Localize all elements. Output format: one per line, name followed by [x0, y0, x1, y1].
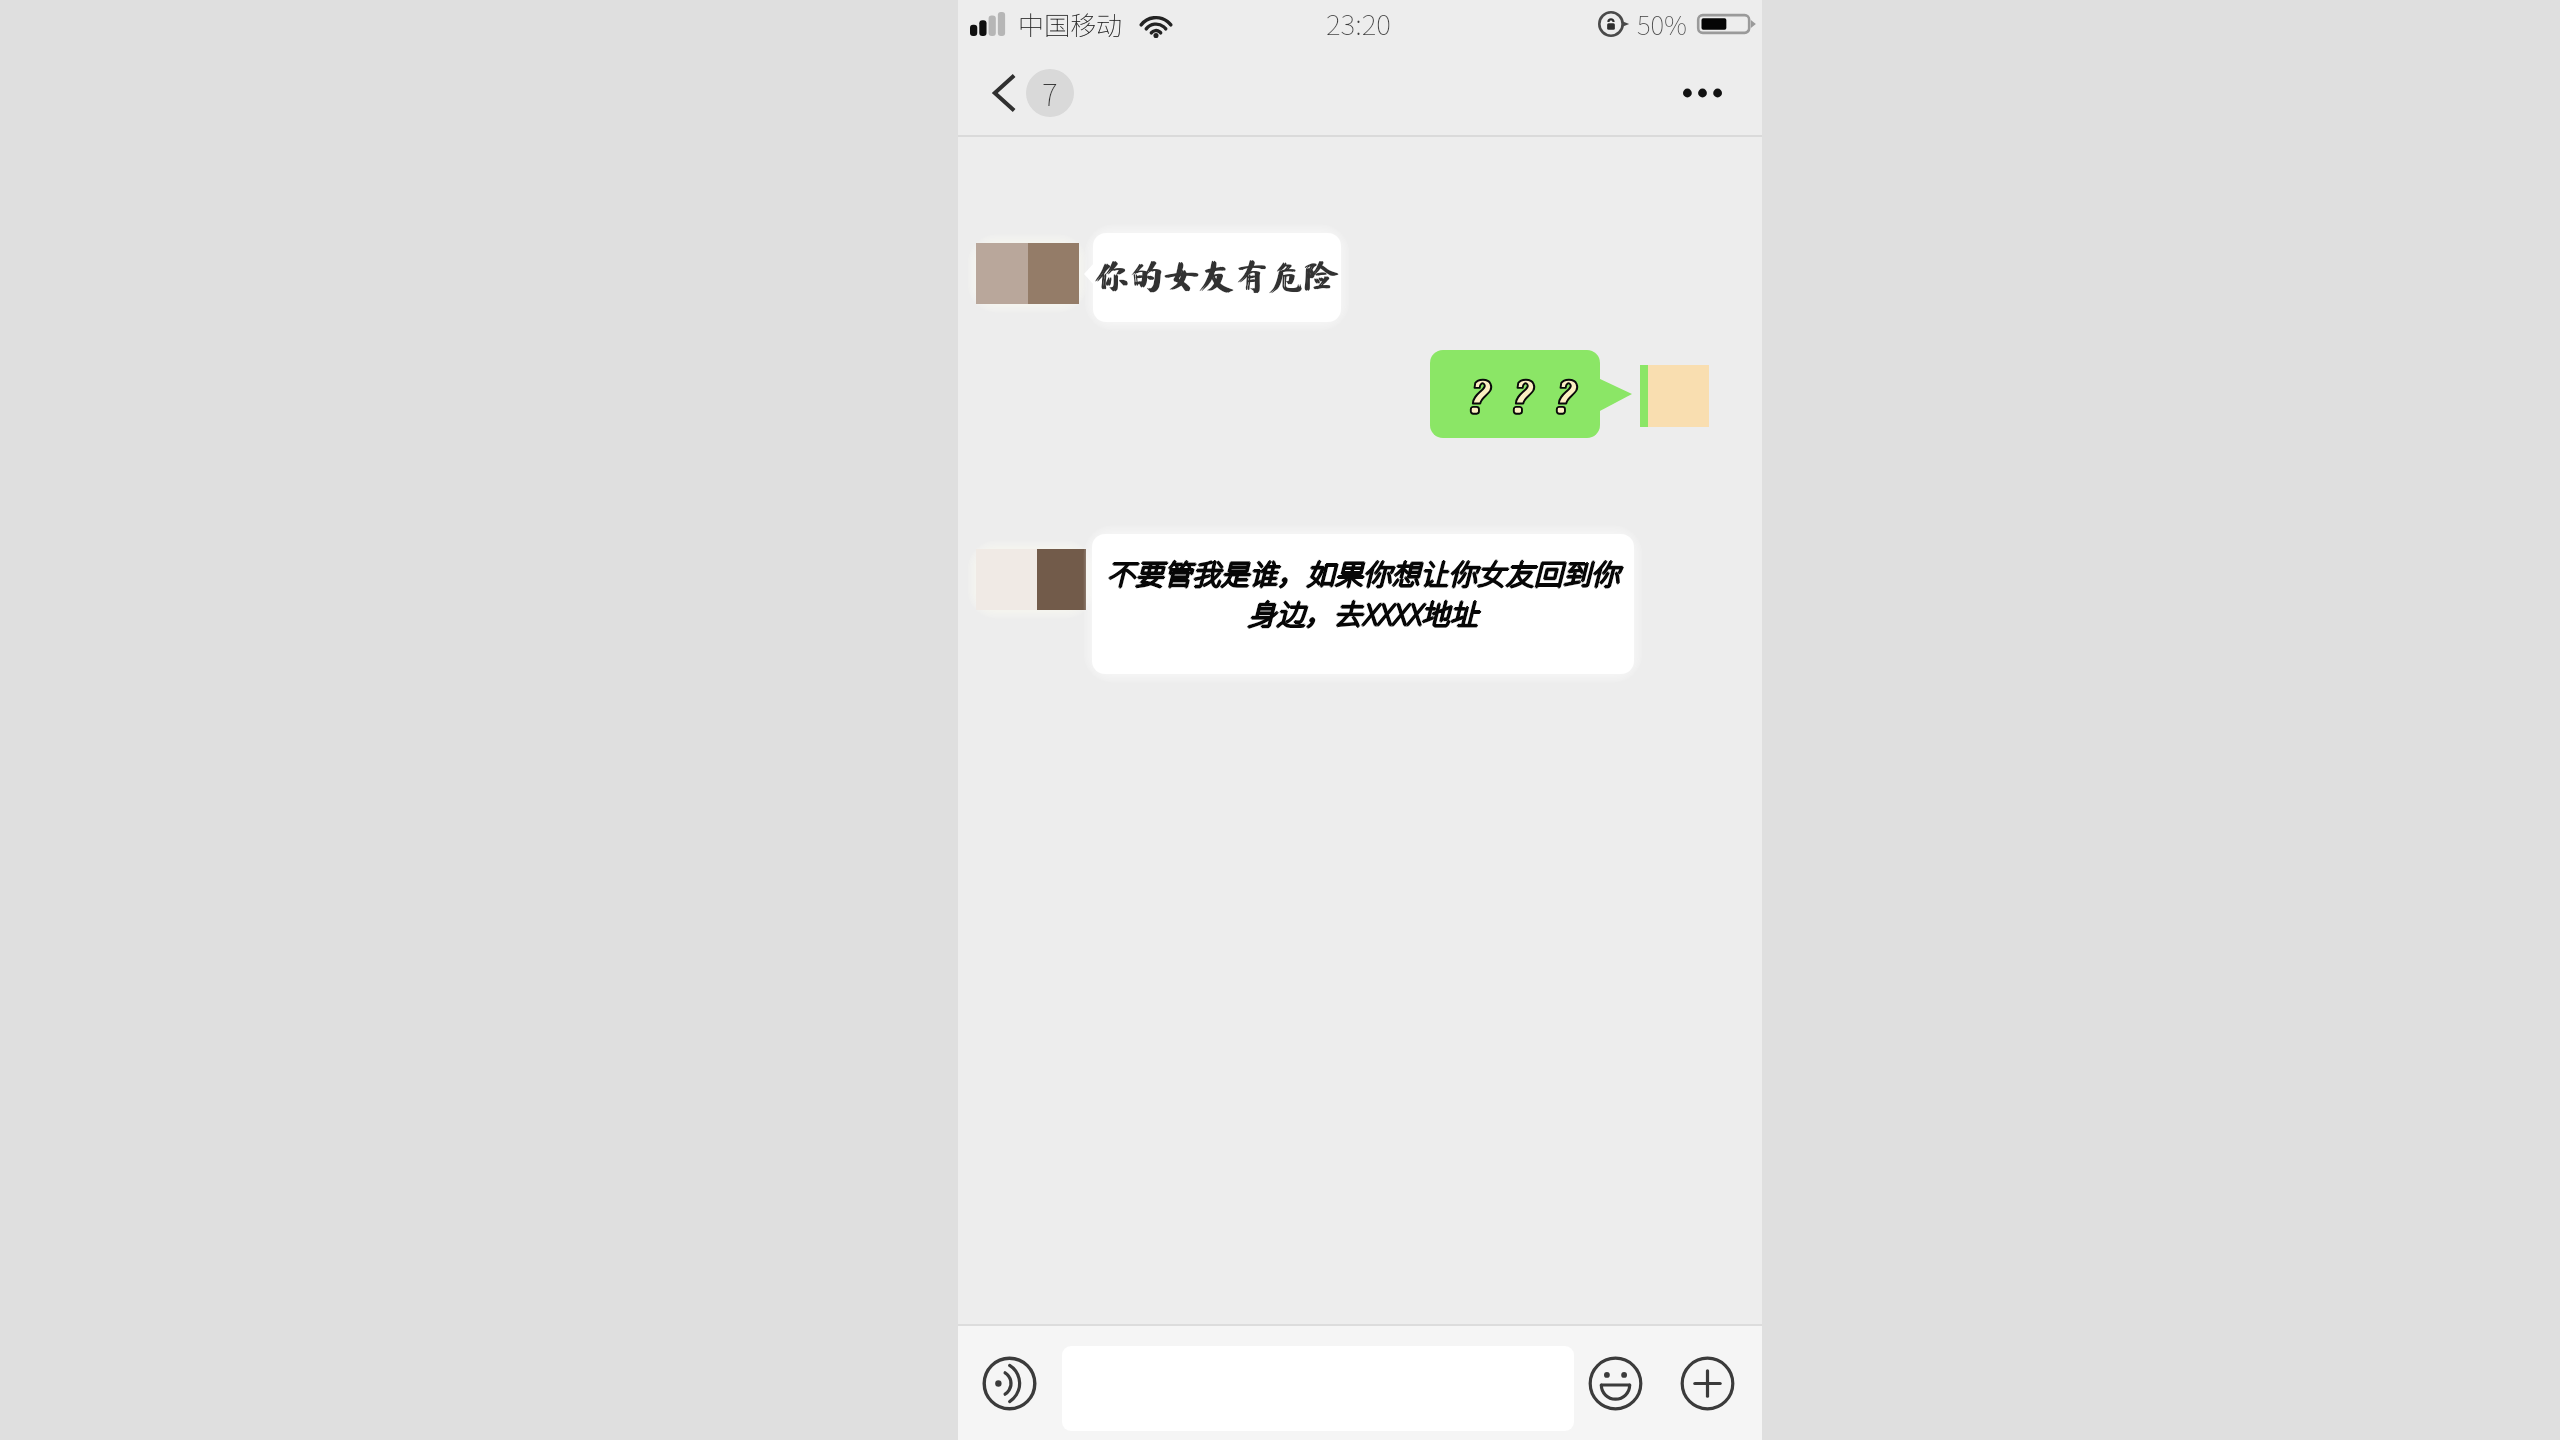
staticText: 中国移动: [1018, 5, 1123, 43]
button[interactable]: More options: [1675, 71, 1729, 115]
staticText: 你的女友有危险: [1095, 258, 1341, 293]
staticText: 不要管我是谁，如果你想让你女友回到你 身边，去XXXX地址: [1106, 553, 1620, 634]
button[interactable]: 你的女友有危险: [1093, 233, 1341, 322]
staticText: 7: [1042, 71, 1058, 114]
staticText: 不要管我是谁，如果你想让你女友回到你 身边，去XXXX地址: [1106, 551, 1620, 632]
staticText: 你的女友有危险: [1093, 258, 1339, 293]
staticText: 23:20: [1326, 3, 1391, 44]
staticText: 50%: [1637, 5, 1687, 43]
staticText: 中国移动: [1018, 5, 1123, 43]
button[interactable]: 不要管我是谁，如果你想让你女友回到你 身边，去XXXX地址: [1092, 534, 1634, 674]
button[interactable]: More: [1680, 1356, 1735, 1411]
button[interactable]: ？？？: [1430, 350, 1600, 438]
button[interactable]: Back, 7 unread: [993, 69, 1074, 117]
button[interactable]: Voice input: [982, 1356, 1037, 1411]
staticText: 不要管我是谁，如果你想让你女友回到你 身边，去XXXX地址: [1105, 552, 1619, 633]
staticText: 不要管我是谁，如果你想让你女友回到你 身边，去XXXX地址: [1107, 552, 1621, 633]
button[interactable]: Emoji: [1588, 1356, 1643, 1411]
